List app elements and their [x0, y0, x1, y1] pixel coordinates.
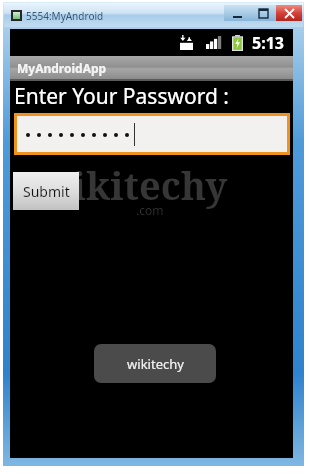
button[interactable]	[17, 116, 287, 152]
staticText: 5:13	[252, 32, 284, 54]
button[interactable]: Minimize	[224, 5, 250, 21]
staticText: wikitechy	[127, 355, 184, 373]
staticText: 5554:MyAndroid	[26, 9, 104, 23]
button[interactable]: Maximize	[250, 5, 276, 21]
staticText: .com	[136, 202, 164, 218]
staticText: MyAndroidApp	[17, 60, 107, 76]
button[interactable]: MyAndroidApp	[10, 56, 293, 79]
staticText: Submit	[23, 182, 70, 201]
staticText: Wikitechy	[32, 159, 228, 211]
button[interactable]: Submit	[13, 172, 79, 210]
staticText: Enter Your Password :	[14, 82, 229, 111]
button[interactable]: Close	[276, 5, 302, 21]
